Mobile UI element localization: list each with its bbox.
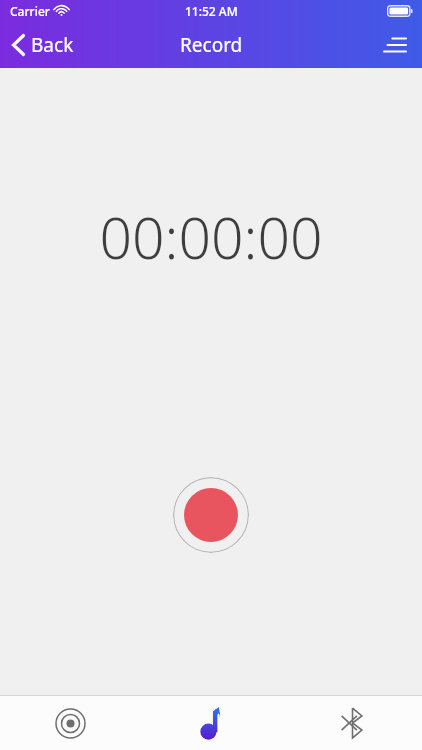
button[interactable]: Bluetooth tab (281, 696, 422, 750)
staticText: Carrier (10, 3, 50, 19)
button[interactable]: Menu (376, 26, 414, 64)
staticText: 00:00:00 (0, 198, 422, 276)
button[interactable]: Record tab (0, 696, 140, 750)
button[interactable]: Record (173, 477, 249, 553)
staticText: Record (180, 32, 243, 58)
button[interactable]: Library tab (140, 696, 281, 750)
staticText: Back (31, 32, 74, 58)
staticText: 11:52 AM (185, 3, 238, 19)
button[interactable]: Back (6, 26, 80, 64)
